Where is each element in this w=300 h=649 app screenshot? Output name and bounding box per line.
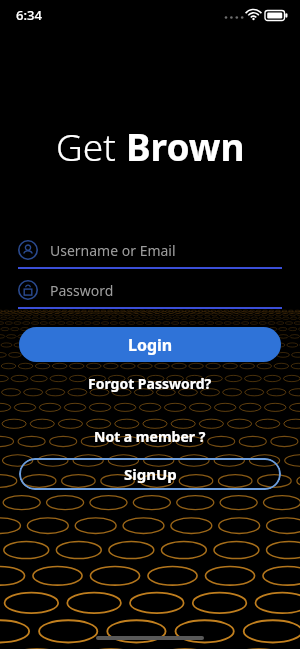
staticText: 6:34 xyxy=(16,6,42,24)
other: Password xyxy=(18,280,38,300)
staticText: SignUp xyxy=(124,464,177,484)
button[interactable]: User xyxy=(18,236,282,264)
button[interactable]: Login xyxy=(19,327,281,362)
staticText: Forgot Password? xyxy=(88,374,212,393)
button[interactable]: Password xyxy=(18,276,282,304)
staticText: Get xyxy=(56,121,126,171)
staticText: Not a member ? xyxy=(94,427,206,446)
staticText: Login xyxy=(128,334,173,356)
button[interactable]: SignUp xyxy=(19,458,281,490)
staticText: Password xyxy=(50,281,114,300)
staticText: Brown xyxy=(126,121,245,171)
other: User xyxy=(18,240,38,260)
button[interactable]: Forgot Password? xyxy=(78,371,222,396)
staticText: Username or Email xyxy=(50,241,176,260)
